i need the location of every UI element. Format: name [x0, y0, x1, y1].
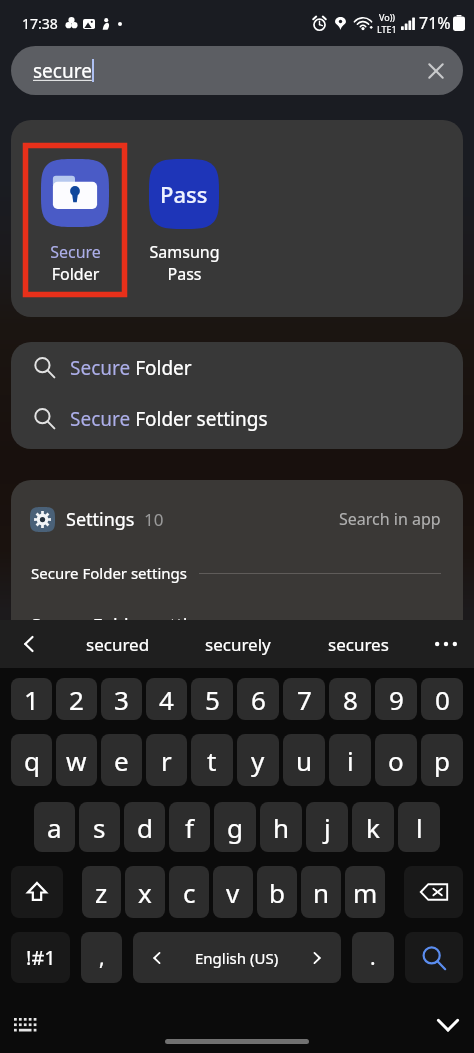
- button[interactable]: x: [125, 866, 165, 918]
- button[interactable]: 8: [329, 678, 371, 720]
- button[interactable]: a: [34, 802, 75, 852]
- button[interactable]: c: [169, 866, 209, 918]
- button[interactable]: 2: [56, 678, 97, 720]
- button[interactable]: e: [101, 734, 142, 786]
- button[interactable]: p: [421, 734, 463, 786]
- button[interactable]: Secure Folder: [11, 342, 463, 393]
- staticText: j: [324, 810, 331, 845]
- button[interactable]: Secure Folder settings: [11, 393, 463, 444]
- staticText: 71%: [419, 12, 451, 34]
- staticText: Secure Folder: [50, 241, 101, 285]
- button[interactable]: y: [237, 734, 279, 786]
- button[interactable]: ,: [81, 932, 122, 983]
- button[interactable]: !#1: [11, 932, 70, 983]
- staticText: f: [185, 810, 194, 845]
- staticText: 9: [389, 682, 404, 717]
- button[interactable]: h: [260, 802, 302, 852]
- button[interactable]: Secure Folder: [23, 143, 127, 297]
- button[interactable]: j: [306, 802, 348, 852]
- button[interactable]: secure: [11, 46, 463, 95]
- staticText: g: [227, 810, 243, 845]
- staticText: Secure Folder settings: [31, 563, 187, 583]
- staticText: l: [416, 810, 423, 845]
- button[interactable]: Secure Folder settings: [31, 558, 441, 588]
- button[interactable]: r: [146, 734, 187, 786]
- staticText: Samsung Pass: [149, 241, 220, 285]
- button[interactable]: Backspace: [404, 866, 463, 918]
- button[interactable]: .: [352, 932, 394, 983]
- button[interactable]: l: [398, 802, 440, 852]
- button[interactable]: securely: [178, 620, 298, 668]
- button[interactable]: f: [169, 802, 210, 852]
- button[interactable]: 7: [283, 678, 325, 720]
- button[interactable]: 0: [421, 678, 463, 720]
- staticText: w: [66, 743, 87, 778]
- staticText: secures: [328, 633, 389, 656]
- button[interactable]: secured: [58, 620, 178, 668]
- staticText: ,: [99, 943, 105, 972]
- staticText: z: [95, 875, 108, 910]
- button[interactable]: More options: [418, 620, 474, 668]
- button[interactable]: b: [257, 866, 297, 918]
- button[interactable]: z: [82, 866, 121, 918]
- staticText: b: [269, 875, 285, 910]
- button[interactable]: Search: [405, 932, 463, 983]
- button[interactable]: m: [345, 866, 385, 918]
- staticText: secure: [33, 58, 92, 84]
- button[interactable]: 1: [11, 678, 52, 720]
- button[interactable]: g: [214, 802, 256, 852]
- button[interactable]: n: [301, 866, 341, 918]
- button[interactable]: Pass: [132, 143, 236, 297]
- button[interactable]: 3: [101, 678, 142, 720]
- button[interactable]: Search in app: [339, 508, 441, 530]
- button[interactable]: Change keyboard: [11, 1010, 41, 1040]
- staticText: English (US): [195, 948, 279, 968]
- staticText: .: [370, 943, 376, 972]
- button[interactable]: Shift: [11, 866, 63, 918]
- button[interactable]: Previous suggestions: [0, 620, 58, 668]
- button[interactable]: English (US): [133, 932, 341, 983]
- staticText: t: [207, 743, 217, 778]
- staticText: o: [388, 743, 404, 778]
- staticText: Settings: [66, 507, 135, 532]
- button[interactable]: v: [213, 866, 253, 918]
- button[interactable]: secures: [298, 620, 418, 668]
- button[interactable]: i: [329, 734, 371, 786]
- staticText: !#1: [26, 944, 56, 971]
- button[interactable]: Secure Folder settings: [31, 611, 463, 640]
- staticText: 4: [159, 682, 174, 717]
- staticText: Secure Folder settings: [70, 406, 268, 432]
- staticText: 2: [69, 682, 84, 717]
- staticText: Vo)): [379, 11, 396, 23]
- staticText: h: [273, 810, 290, 845]
- button[interactable]: q: [11, 734, 52, 786]
- staticText: r: [161, 743, 172, 778]
- button[interactable]: Clear search: [421, 56, 451, 86]
- button[interactable]: 6: [237, 678, 279, 720]
- staticText: c: [183, 875, 196, 910]
- button[interactable]: u: [283, 734, 325, 786]
- button[interactable]: 5: [191, 678, 233, 720]
- button[interactable]: 9: [375, 678, 417, 720]
- button[interactable]: s: [79, 802, 120, 852]
- staticText: u: [296, 743, 313, 778]
- staticText: LTE1: [377, 23, 397, 35]
- staticText: 3: [114, 682, 129, 717]
- button[interactable]: 4: [146, 678, 187, 720]
- button[interactable]: k: [352, 802, 394, 852]
- button[interactable]: w: [56, 734, 97, 786]
- staticText: secured: [86, 633, 150, 656]
- staticText: 5: [205, 682, 220, 717]
- staticText: x: [138, 875, 152, 910]
- staticText: s: [93, 810, 106, 845]
- staticText: i: [347, 743, 354, 778]
- staticText: 6: [251, 682, 266, 717]
- staticText: a: [47, 810, 62, 845]
- staticText: 8: [343, 682, 358, 717]
- button[interactable]: t: [191, 734, 233, 786]
- staticText: 0: [435, 682, 450, 717]
- staticText: e: [114, 743, 129, 778]
- button[interactable]: Hide keyboard: [432, 1009, 464, 1041]
- button[interactable]: o: [375, 734, 417, 786]
- button[interactable]: d: [124, 802, 165, 852]
